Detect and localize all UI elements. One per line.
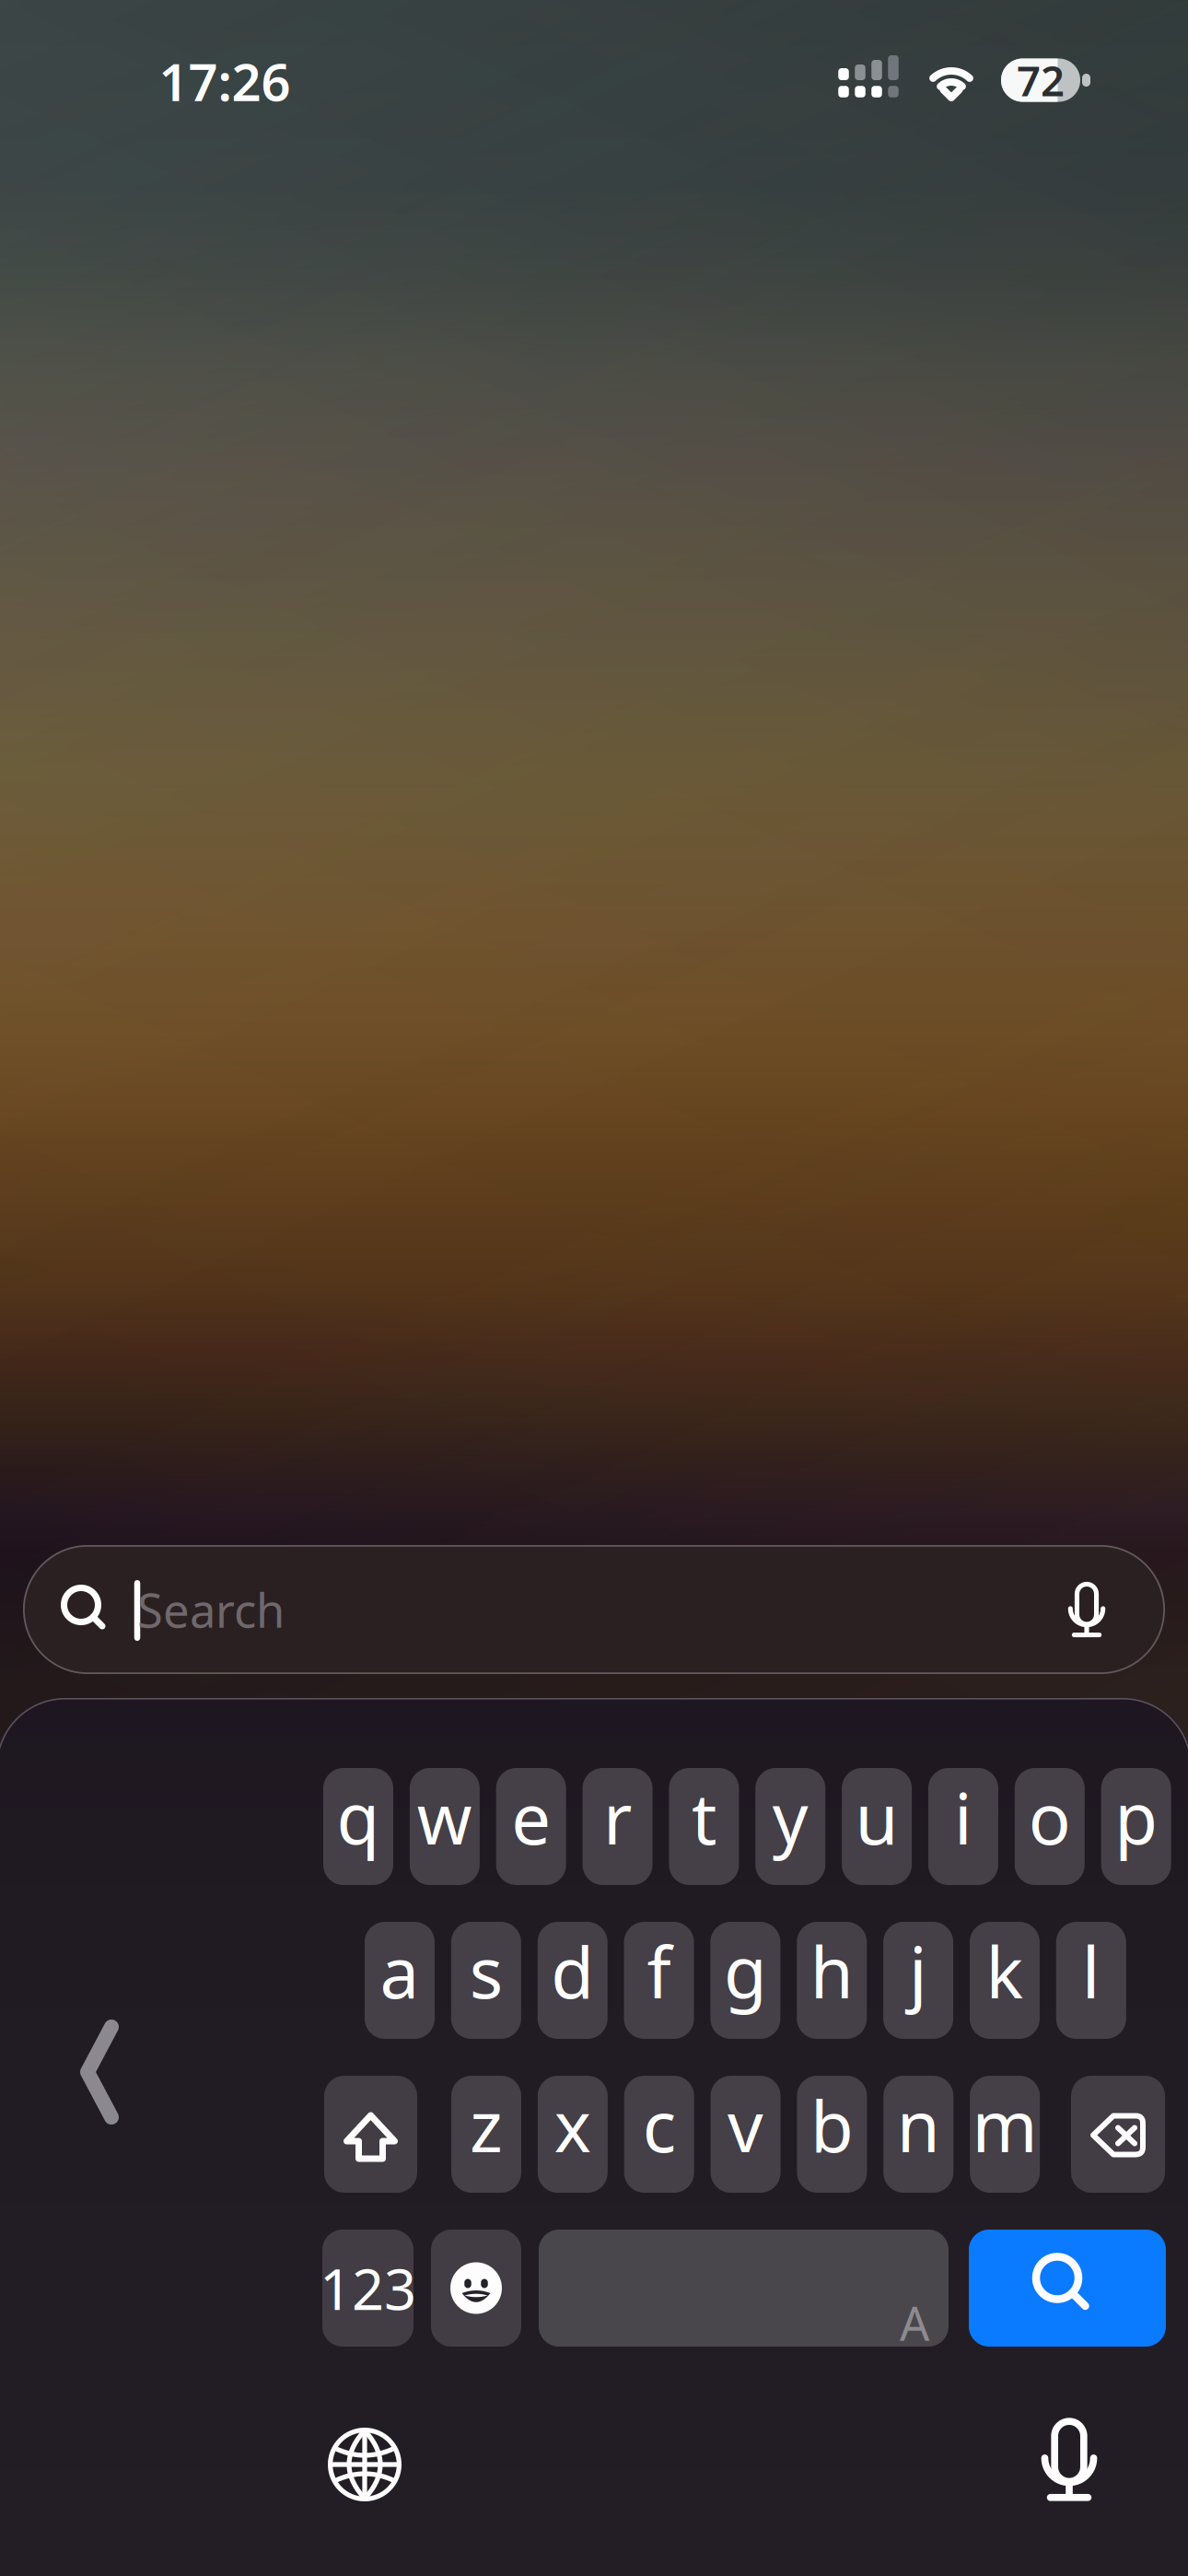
staticText: Search	[137, 1579, 285, 1641]
button[interactable]: j	[883, 1922, 953, 2039]
staticText: i	[954, 1771, 972, 1864]
button[interactable]: t	[669, 1768, 739, 1885]
staticText: a	[380, 1925, 419, 2018]
staticText: s	[470, 1925, 503, 2018]
staticText: b	[810, 2078, 854, 2171]
button[interactable]: n	[883, 2076, 953, 2193]
staticText: g	[724, 1925, 767, 2018]
staticText: 123	[320, 2251, 416, 2326]
button[interactable]: k	[970, 1922, 1040, 2039]
staticText: c	[643, 2078, 676, 2171]
button[interactable]: p	[1101, 1768, 1171, 1885]
button[interactable]: z	[451, 2076, 521, 2193]
staticText: A	[900, 2292, 929, 2354]
button[interactable]: u	[842, 1768, 912, 1885]
button[interactable]: Search	[969, 2230, 1166, 2347]
button[interactable]: o	[1015, 1768, 1085, 1885]
button[interactable]: f	[624, 1922, 694, 2039]
staticText: k	[986, 1925, 1024, 2018]
button[interactable]: v	[710, 2076, 780, 2193]
staticText: y	[772, 1771, 808, 1864]
button[interactable]: q	[323, 1768, 393, 1885]
staticText: m	[972, 2078, 1038, 2171]
button[interactable]: h	[797, 1922, 867, 2039]
staticText: 17:26	[159, 47, 291, 115]
button[interactable]: Expand keyboard	[85, 2024, 116, 2122]
button[interactable]: r	[582, 1768, 652, 1885]
button[interactable]: b	[797, 2076, 867, 2193]
staticText: t	[692, 1771, 716, 1864]
button[interactable]: Emoji	[431, 2230, 521, 2347]
button[interactable]: i	[928, 1768, 998, 1885]
button[interactable]: x	[538, 2076, 608, 2193]
staticText: f	[647, 1925, 671, 2018]
button[interactable]: 123	[320, 2230, 416, 2347]
staticText: v	[728, 2078, 763, 2171]
staticText: l	[1082, 1925, 1100, 2018]
button[interactable]: Search	[23, 1545, 1165, 1674]
staticText: z	[470, 2078, 503, 2171]
staticText: e	[511, 1771, 551, 1864]
staticText: x	[554, 2078, 591, 2171]
staticText: h	[810, 1925, 854, 2018]
button[interactable]: Dictation	[1034, 2418, 1104, 2504]
button[interactable]: Shift	[324, 2076, 417, 2193]
staticText: o	[1028, 1771, 1071, 1864]
button[interactable]: Next keyboard	[328, 2428, 402, 2501]
button[interactable]: m	[970, 2076, 1040, 2193]
button[interactable]: c	[624, 2076, 694, 2193]
button[interactable]: Delete	[1071, 2076, 1165, 2193]
staticText: r	[603, 1771, 632, 1864]
button[interactable]: g	[710, 1922, 780, 2039]
staticText: d	[551, 1925, 594, 2018]
button[interactable]: l	[1056, 1922, 1126, 2039]
staticText: 72	[1017, 52, 1065, 108]
staticText: n	[897, 2078, 940, 2171]
button[interactable]: Space	[539, 2230, 949, 2347]
button[interactable]: y	[755, 1768, 825, 1885]
button[interactable]: e	[496, 1768, 566, 1885]
staticText: u	[855, 1771, 898, 1864]
button[interactable]: d	[538, 1922, 608, 2039]
staticText: j	[909, 1925, 927, 2018]
staticText: w	[417, 1771, 472, 1864]
button[interactable]: w	[410, 1768, 480, 1885]
staticText: p	[1115, 1771, 1158, 1864]
staticText: q	[337, 1771, 380, 1864]
button[interactable]: s	[451, 1922, 521, 2039]
button[interactable]: a	[365, 1922, 435, 2039]
